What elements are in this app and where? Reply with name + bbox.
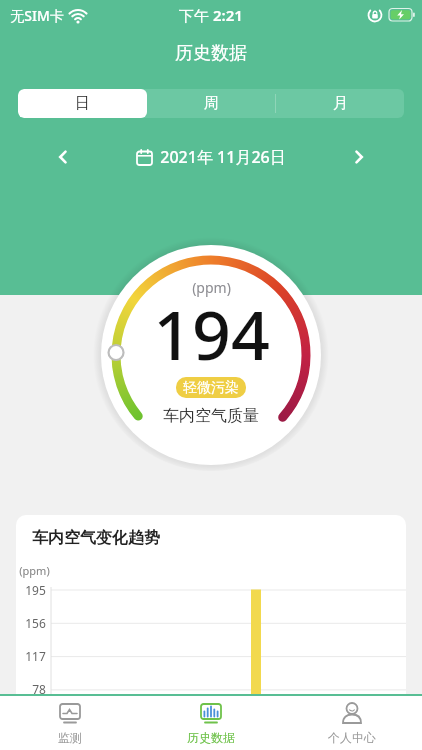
staticText: 2021年 11月26日 [160,146,286,168]
button[interactable]: 历史数据 [140,696,281,750]
staticText: 156 [25,615,46,631]
staticText: 195 [25,582,46,598]
staticText: 日 [75,94,90,113]
button[interactable]: 2021年 11月26日 [136,146,286,168]
staticText: 无SIM卡 [10,6,64,25]
button[interactable]: 个人中心 [281,696,422,750]
button[interactable]: 月 [276,89,404,118]
staticText: 194 [153,287,270,380]
button[interactable]: 轻微污染 [176,377,246,398]
button[interactable]: 日 [18,89,147,118]
staticText: 车内空气变化趋势 [32,528,160,548]
staticText: 117 [25,648,46,664]
staticText: 轻微污染 [183,379,239,397]
staticText: 月 [333,94,348,113]
staticText: (ppm) [192,278,231,297]
staticText: (ppm) [19,563,50,578]
staticText: 历史数据 [175,42,247,65]
staticText: 周 [204,94,219,113]
staticText: 监测 [58,730,82,745]
button[interactable]: 周 [147,89,275,118]
staticText: 历史数据 [187,730,235,745]
staticText: 个人中心 [328,730,376,745]
staticText: 78 [32,681,46,694]
button[interactable] [352,150,366,164]
button[interactable]: 监测 [0,696,140,750]
staticText: 车内空气质量 [163,406,259,426]
button[interactable] [56,150,70,164]
staticText: 下午 2:21 [179,5,243,25]
